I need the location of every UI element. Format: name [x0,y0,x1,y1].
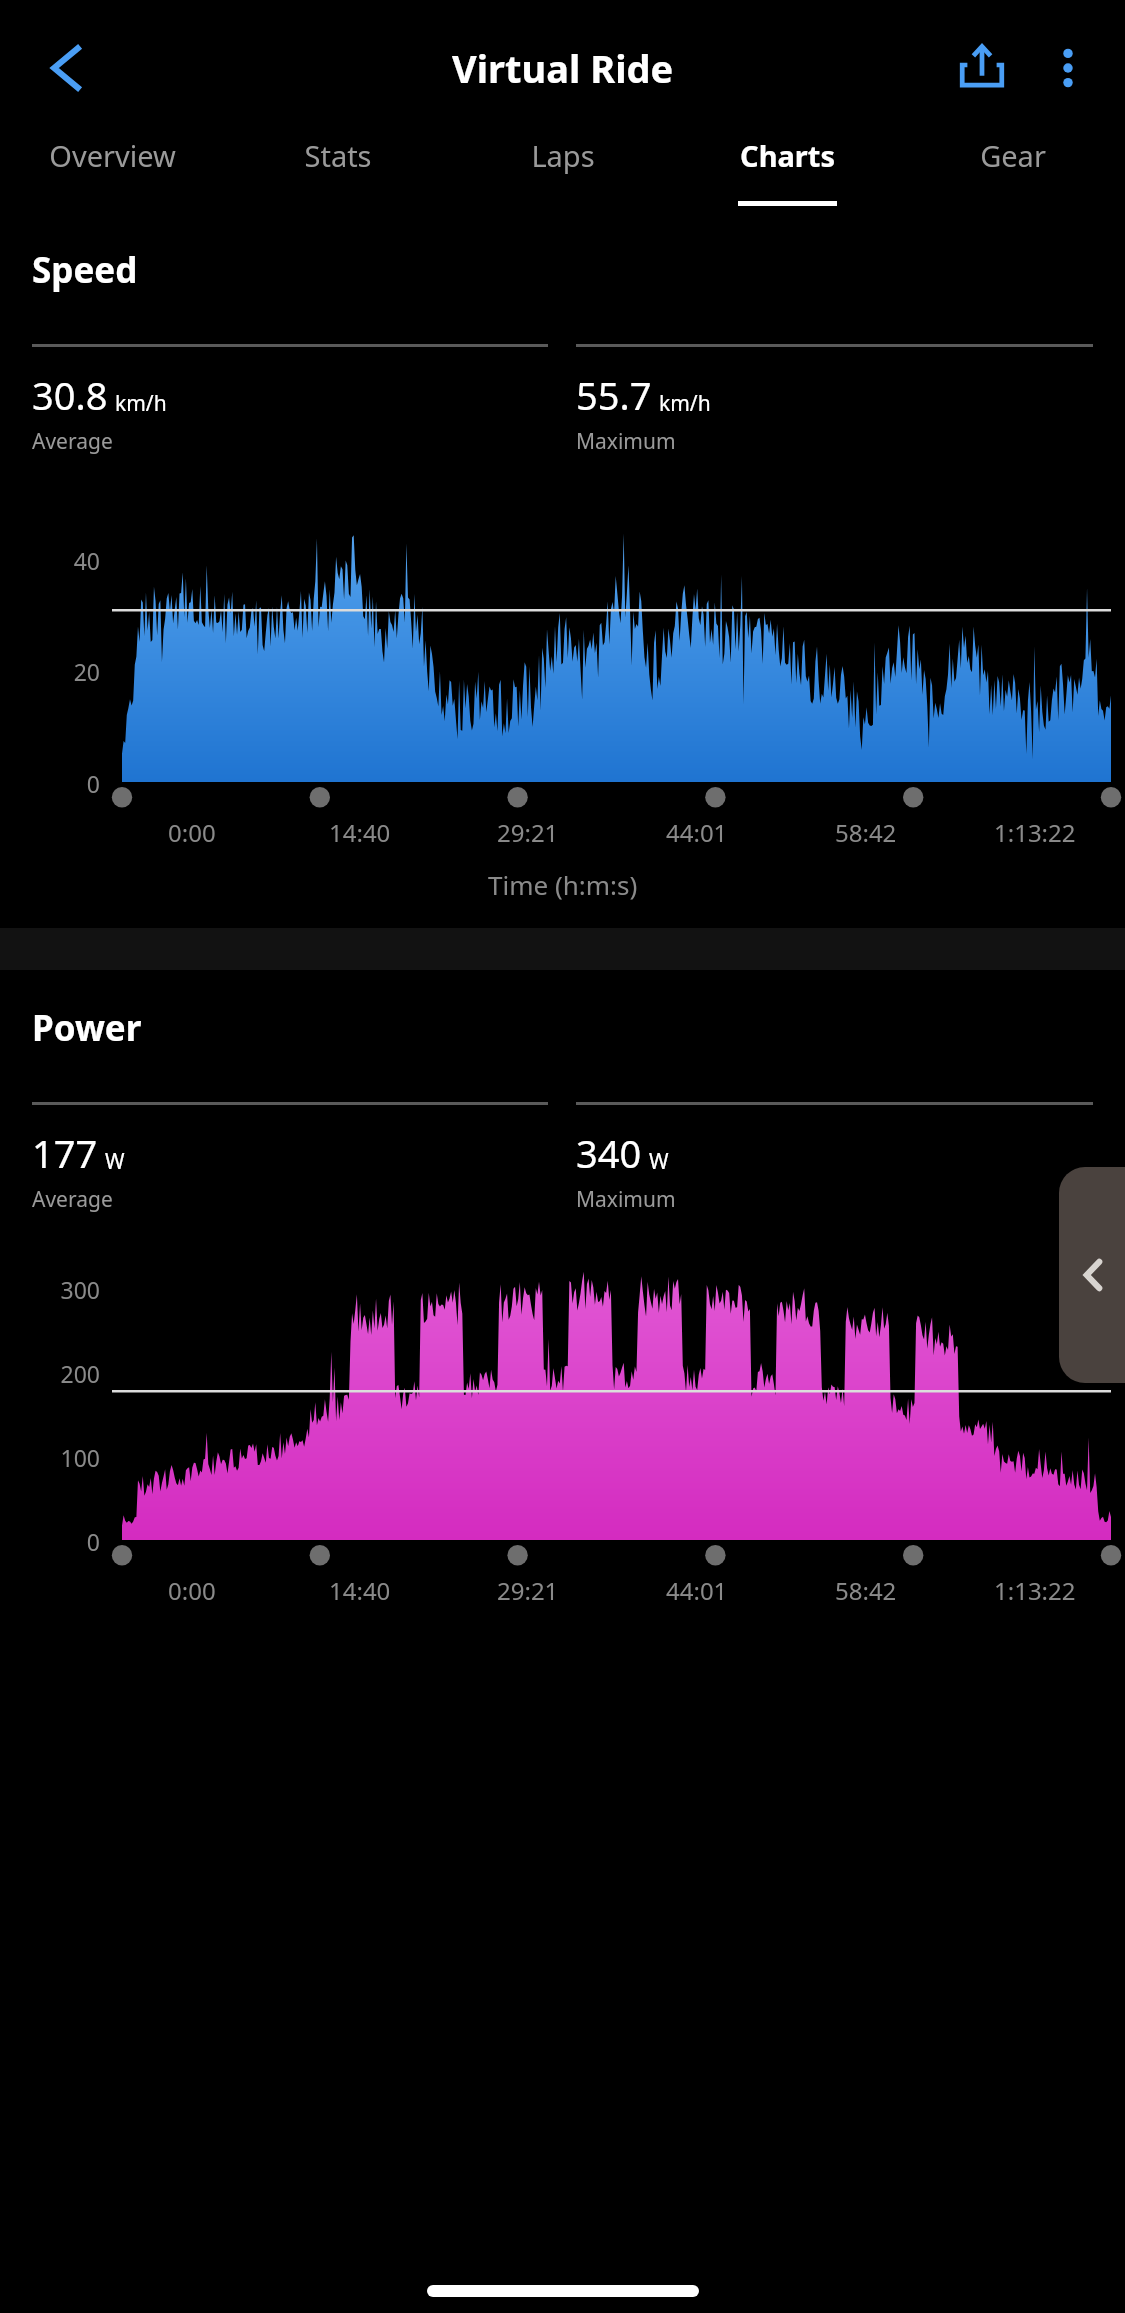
staticText: 1:13:22 [994,1574,1076,1607]
staticText: Speed [32,246,138,294]
staticText: 20 [0,656,100,687]
staticText: W [649,1147,669,1176]
staticText: 55.7 [576,369,652,421]
staticText: Charts [740,136,835,175]
button[interactable]: Back [22,27,104,109]
staticText: Laps [531,136,595,175]
staticText: 1:13:22 [994,816,1076,849]
staticText: 0 [0,768,100,799]
button[interactable]: Charts [675,136,900,206]
button[interactable]: Laps [450,136,675,175]
staticText: 14:40 [329,1574,391,1607]
button[interactable]: More options [1025,25,1111,111]
button[interactable]: Share [939,25,1025,111]
staticText: 29:21 [497,816,559,849]
staticText: Average [32,427,113,456]
staticText: 100 [0,1442,100,1473]
staticText: Average [32,1185,113,1214]
staticText: 14:40 [329,816,391,849]
staticText: Virtual Ride [452,42,674,94]
staticText: 0 [0,1526,100,1557]
staticText: 44:01 [666,816,728,849]
staticText: 300 [0,1274,100,1305]
button[interactable]: Stats [225,136,450,175]
staticText: 58:42 [835,1574,897,1607]
staticText: 200 [0,1358,100,1389]
staticText: Overview [49,136,176,175]
staticText: Maximum [576,1185,676,1214]
staticText: W [105,1147,125,1176]
button[interactable]: Overview [0,136,225,175]
staticText: Stats [304,136,372,175]
staticText: 29:21 [497,1574,559,1607]
staticText: 0:00 [168,816,216,849]
staticText: 58:42 [835,816,897,849]
staticText: Maximum [576,427,676,456]
staticText: 30.8 [32,369,108,421]
staticText: Time (h:m:s) [488,867,638,902]
button[interactable]: Open panel [1059,1167,1125,1383]
staticText: 177 [32,1127,98,1179]
staticText: 340 [576,1127,642,1179]
staticText: Power [32,1004,142,1052]
staticText: 0:00 [168,1574,216,1607]
staticText: km/h [115,389,167,418]
staticText: 40 [0,545,100,576]
button[interactable]: Gear [900,136,1125,175]
staticText: km/h [659,389,711,418]
staticText: 44:01 [666,1574,728,1607]
staticText: Gear [980,136,1046,175]
